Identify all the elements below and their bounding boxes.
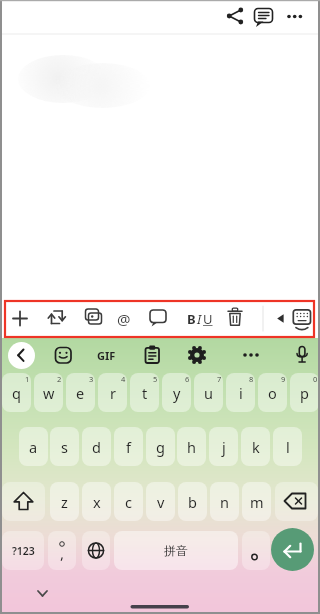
- button[interactable]: [2, 482, 45, 521]
- button[interactable]: [49, 341, 77, 369]
- staticText: ?123: [12, 544, 35, 558]
- staticText: GIF: [97, 348, 116, 363]
- staticText: n: [220, 492, 229, 512]
- button[interactable]: [78, 304, 106, 334]
- staticText: q: [12, 383, 21, 403]
- staticText: o: [268, 383, 277, 403]
- staticText: v: [157, 492, 165, 512]
- staticText: l: [286, 437, 290, 457]
- staticText: x: [93, 492, 101, 512]
- staticText: 1: [25, 374, 30, 384]
- staticText: ,: [60, 543, 65, 563]
- button[interactable]: s: [50, 427, 79, 466]
- button[interactable]: [43, 304, 71, 334]
- button[interactable]: h: [177, 427, 206, 466]
- staticText: U: [203, 310, 213, 328]
- button[interactable]: e: [66, 373, 95, 412]
- staticText: B: [187, 310, 196, 328]
- staticText: d: [92, 437, 101, 457]
- staticText: I: [197, 310, 202, 328]
- button[interactable]: i: [226, 373, 255, 412]
- staticText: 7: [217, 374, 222, 384]
- button[interactable]: t: [130, 373, 159, 412]
- button[interactable]: r: [98, 373, 127, 412]
- staticText: i: [239, 383, 243, 403]
- staticText: 9: [281, 374, 286, 384]
- staticText: t: [142, 383, 148, 403]
- button[interactable]: [221, 304, 249, 334]
- button[interactable]: f: [114, 427, 143, 466]
- staticText: 拼音: [164, 543, 188, 558]
- button[interactable]: c: [114, 482, 143, 521]
- staticText: s: [61, 437, 68, 457]
- button[interactable]: [8, 342, 35, 369]
- button[interactable]: [267, 304, 295, 334]
- staticText: g: [156, 437, 165, 457]
- button[interactable]: [6, 304, 34, 334]
- button[interactable]: d: [82, 427, 111, 466]
- button[interactable]: l: [273, 427, 302, 466]
- staticText: 6: [185, 374, 190, 384]
- staticText: j: [222, 437, 226, 457]
- button[interactable]: y: [162, 373, 191, 412]
- button[interactable]: [288, 341, 316, 369]
- staticText: w: [43, 383, 55, 403]
- button[interactable]: v: [146, 482, 175, 521]
- button[interactable]: m: [242, 482, 271, 521]
- button[interactable]: [275, 482, 318, 521]
- staticText: m: [250, 492, 264, 512]
- button[interactable]: b: [178, 482, 207, 521]
- button[interactable]: z: [50, 482, 79, 521]
- staticText: f: [126, 437, 131, 457]
- button[interactable]: [183, 341, 211, 369]
- button[interactable]: p: [290, 373, 319, 412]
- staticText: @: [117, 309, 131, 329]
- staticText: h: [187, 437, 196, 457]
- button[interactable]: [110, 304, 138, 334]
- button[interactable]: [237, 341, 265, 369]
- button[interactable]: x: [82, 482, 111, 521]
- button[interactable]: [288, 304, 316, 334]
- button[interactable]: u: [194, 373, 223, 412]
- staticText: r: [110, 383, 116, 403]
- staticText: 4: [121, 374, 126, 384]
- staticText: c: [125, 492, 132, 512]
- button[interactable]: [183, 304, 211, 334]
- staticText: 2: [57, 374, 62, 384]
- button[interactable]: g: [146, 427, 175, 466]
- staticText: 5: [153, 374, 158, 384]
- staticText: b: [188, 492, 197, 512]
- button[interactable]: [144, 304, 172, 334]
- button[interactable]: o: [258, 373, 287, 412]
- button[interactable]: n: [210, 482, 239, 521]
- staticText: 8: [249, 374, 254, 384]
- button[interactable]: [242, 531, 270, 570]
- staticText: p: [300, 383, 309, 403]
- staticText: k: [252, 437, 260, 457]
- button[interactable]: [271, 528, 314, 571]
- staticText: 3: [89, 374, 94, 384]
- button[interactable]: a: [19, 427, 48, 466]
- staticText: u: [204, 383, 213, 403]
- button[interactable]: 拼音: [114, 531, 238, 570]
- button[interactable]: [48, 531, 76, 570]
- button[interactable]: [82, 531, 110, 570]
- button[interactable]: k: [241, 427, 270, 466]
- button[interactable]: [93, 341, 121, 369]
- staticText: e: [76, 383, 85, 403]
- button[interactable]: [138, 341, 166, 369]
- staticText: 0: [313, 374, 318, 384]
- button[interactable]: q: [2, 373, 31, 412]
- staticText: a: [29, 437, 38, 457]
- staticText: z: [61, 492, 68, 512]
- staticText: y: [173, 383, 181, 403]
- button[interactable]: w: [34, 373, 63, 412]
- button[interactable]: ?123: [2, 531, 44, 570]
- button[interactable]: j: [209, 427, 238, 466]
